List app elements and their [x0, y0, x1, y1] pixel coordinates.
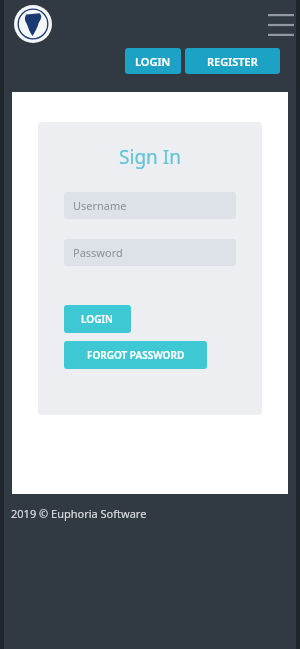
button[interactable]: NGO Africa logo	[14, 5, 52, 43]
staticText: FORGOT PASSWORD	[87, 348, 185, 362]
staticText: REGISTER	[207, 54, 258, 69]
staticText: LOGIN	[135, 54, 171, 69]
button[interactable]: LOGIN	[64, 305, 131, 333]
button[interactable]: FORGOT PASSWORD	[64, 341, 207, 369]
staticText: Password	[73, 245, 123, 260]
button[interactable]: Menu	[268, 14, 294, 36]
button[interactable]: REGISTER	[185, 48, 280, 74]
staticText: Sign In	[38, 144, 262, 170]
button[interactable]: LOGIN	[125, 48, 181, 74]
staticText: Username	[73, 198, 127, 213]
staticText: LOGIN	[81, 312, 114, 326]
button[interactable]: Password	[64, 239, 236, 266]
button[interactable]: Username	[64, 192, 236, 219]
staticText: 2019 © Euphoria Software	[11, 506, 147, 521]
